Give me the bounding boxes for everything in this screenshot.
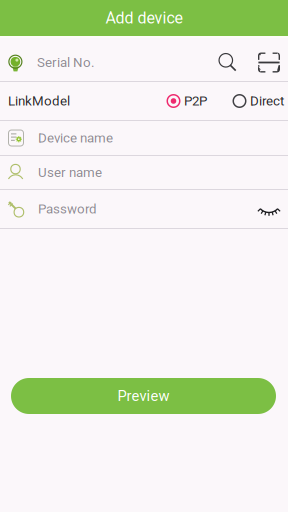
- staticText: P2P: [184, 93, 207, 109]
- button[interactable]: Preview: [11, 378, 276, 414]
- staticText: Preview: [117, 387, 169, 405]
- button[interactable]: P2P: [167, 87, 207, 115]
- button[interactable]: Search: [212, 46, 244, 78]
- staticText: Serial No.: [37, 55, 95, 70]
- staticText: Direct: [250, 93, 284, 109]
- staticText: Device name: [38, 130, 113, 146]
- staticText: User name: [38, 165, 102, 180]
- button[interactable]: Scan QR code: [253, 46, 285, 78]
- button[interactable]: Direct: [207, 87, 288, 115]
- staticText: LinkModel: [8, 93, 70, 109]
- staticText: Add device: [105, 9, 182, 27]
- button[interactable]: Show password: [254, 194, 284, 224]
- staticText: Password: [38, 201, 97, 217]
